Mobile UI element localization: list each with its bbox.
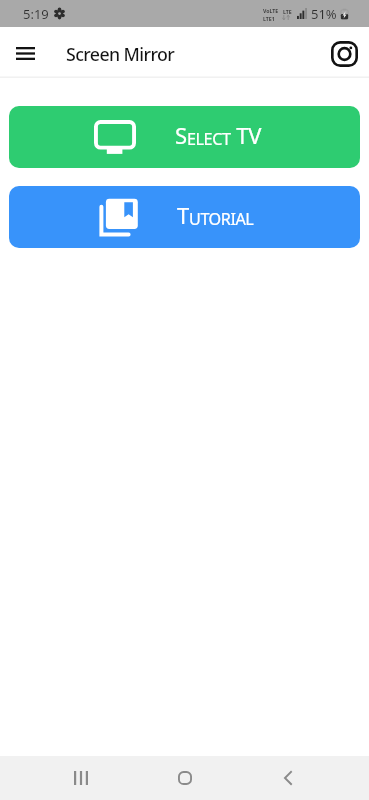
button[interactable]: Home	[161, 756, 209, 800]
staticText: LTE	[283, 8, 292, 15]
staticText: 51%	[311, 5, 337, 23]
button[interactable]: T	[9, 186, 360, 248]
staticText: T	[177, 200, 189, 230]
button[interactable]: Back	[264, 756, 312, 800]
staticText: ELECT	[187, 128, 231, 150]
staticText: VoLTE	[263, 7, 279, 14]
button[interactable]: Instagram	[324, 27, 364, 78]
staticText: LTE1	[263, 15, 275, 21]
button[interactable]: Open navigation menu	[0, 27, 50, 78]
staticText: UTORIAL	[189, 208, 254, 230]
staticText: TV	[231, 120, 261, 150]
button[interactable]: S	[9, 106, 360, 168]
staticText: Screen Mirror	[66, 42, 175, 66]
staticText: 5:19	[23, 5, 49, 23]
staticText: S	[175, 120, 187, 150]
button[interactable]: Recent apps	[57, 756, 105, 800]
